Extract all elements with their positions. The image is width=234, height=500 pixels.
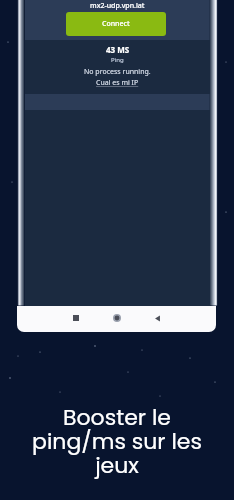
staticText: No process running. [84,67,151,77]
button[interactable]: Cual es mi IP [96,78,139,88]
button[interactable]: Recent apps [68,310,84,326]
staticText: Ping [111,56,124,64]
button[interactable]: Back [149,310,165,326]
staticText: Booster le ping/ms sur les jeux [0,402,234,480]
staticText: 43 MS [106,44,130,55]
staticText: mx2-udp.vpn.lat [90,1,145,11]
button[interactable]: Home [109,310,125,326]
button[interactable]: Connect [66,12,166,36]
staticText: Connect [102,19,130,29]
